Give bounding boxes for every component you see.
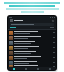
button[interactable]: Tab 2 xyxy=(20,67,32,70)
button[interactable] xyxy=(8,50,56,55)
button[interactable] xyxy=(8,60,56,65)
button[interactable] xyxy=(8,55,56,60)
button[interactable] xyxy=(8,35,56,40)
button[interactable] xyxy=(8,30,56,35)
button[interactable]: Tab 3 xyxy=(32,67,44,70)
button[interactable]: Search xyxy=(52,20,54,22)
button[interactable] xyxy=(10,23,54,26)
button[interactable] xyxy=(8,40,56,45)
button[interactable] xyxy=(8,45,56,50)
button[interactable]: Menu xyxy=(10,19,54,22)
button[interactable] xyxy=(8,65,56,67)
button[interactable]: Tab 4 xyxy=(44,67,56,70)
button[interactable]: Tab 1 xyxy=(8,67,20,70)
